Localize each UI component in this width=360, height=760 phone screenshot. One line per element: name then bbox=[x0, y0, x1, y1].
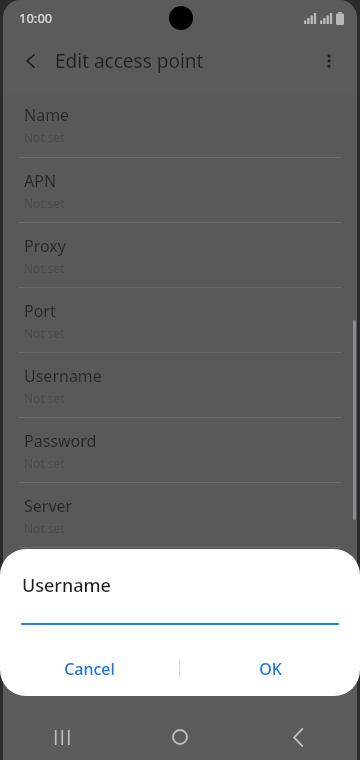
staticText: Not set bbox=[24, 390, 65, 406]
button[interactable]: Name bbox=[3, 92, 357, 157]
staticText: Cancel bbox=[64, 658, 115, 680]
staticText: APN bbox=[24, 170, 57, 192]
staticText: Not set bbox=[24, 455, 65, 471]
staticText: Edit access point bbox=[55, 48, 204, 74]
staticText: Password bbox=[24, 430, 97, 452]
staticText: Username bbox=[22, 573, 111, 598]
button[interactable]: OK bbox=[180, 647, 360, 691]
staticText: OK bbox=[259, 658, 282, 680]
button[interactable]: Back bbox=[11, 41, 51, 81]
staticText: Not set bbox=[24, 129, 65, 145]
staticText: Not set bbox=[24, 260, 65, 276]
staticText: Not set bbox=[24, 520, 65, 536]
staticText: Port bbox=[24, 300, 56, 322]
button[interactable]: Username bbox=[3, 352, 357, 417]
button[interactable]: Server bbox=[3, 482, 357, 547]
staticText: Not set bbox=[24, 585, 65, 601]
button[interactable]: Port bbox=[3, 287, 357, 352]
button[interactable]: Back bbox=[239, 714, 357, 760]
button[interactable]: More options bbox=[309, 41, 349, 81]
staticText: Username bbox=[24, 365, 102, 387]
staticText: MMS proxy bbox=[24, 560, 109, 582]
button[interactable]: Home bbox=[121, 714, 239, 760]
button[interactable]: Recents bbox=[3, 714, 121, 760]
button[interactable]: Password bbox=[3, 417, 357, 482]
button[interactable]: APN bbox=[3, 157, 357, 222]
button[interactable]: MMS port bbox=[3, 612, 357, 677]
staticText: Not set bbox=[24, 325, 65, 341]
staticText: 10:00 bbox=[19, 9, 53, 27]
staticText: Name bbox=[24, 104, 70, 126]
button[interactable]: MMS proxy bbox=[3, 547, 357, 612]
staticText: Proxy bbox=[24, 235, 66, 257]
button[interactable]: Proxy bbox=[3, 222, 357, 287]
button[interactable]: Cancel bbox=[0, 647, 179, 691]
staticText: Not set bbox=[24, 195, 65, 211]
staticText: Server bbox=[24, 495, 73, 517]
